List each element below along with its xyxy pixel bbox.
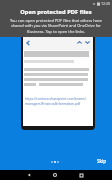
staticText: You can open protected PDF files that ot… — [5, 18, 107, 34]
button[interactable]: Back — [23, 38, 32, 47]
staticText: 12:30 — [101, 1, 110, 6]
button[interactable]: Next message — [83, 38, 91, 46]
button[interactable]: Back — [24, 170, 34, 180]
button[interactable]: Previous message — [75, 38, 83, 46]
button[interactable]: Page indicator — [51, 159, 59, 164]
button[interactable]: Recent apps — [76, 170, 86, 180]
button[interactable]: Home — [50, 170, 60, 180]
staticText: Open protected PDF files — [20, 8, 92, 16]
button[interactable]: https://contoso.sharepoint.com/teams/ ma… — [25, 96, 86, 106]
button[interactable]: Skip — [94, 156, 110, 165]
staticText: Skip — [97, 158, 107, 164]
